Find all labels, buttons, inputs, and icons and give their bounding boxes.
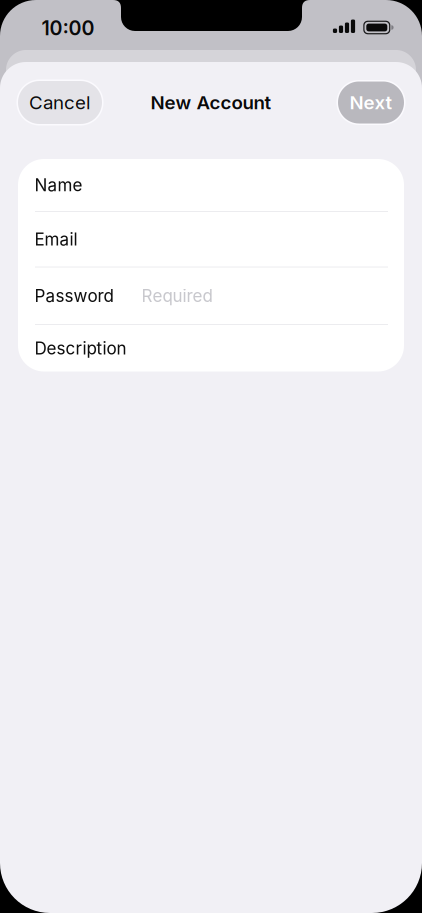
- staticText: Password: [34, 285, 113, 306]
- staticText: Description: [34, 338, 126, 359]
- staticText: Required: [141, 285, 212, 306]
- staticText: Email: [34, 229, 77, 250]
- button[interactable]: Cancel: [18, 81, 102, 124]
- staticText: Cancel: [29, 91, 91, 114]
- button[interactable]: Description: [18, 325, 404, 371]
- staticText: Name: [34, 175, 82, 195]
- button[interactable]: Password: [18, 267, 404, 324]
- staticText: 10:00: [41, 16, 94, 40]
- button[interactable]: Next: [338, 81, 404, 123]
- staticText: Next: [349, 91, 392, 114]
- button[interactable]: Email: [18, 212, 404, 266]
- button[interactable]: Name: [18, 159, 404, 211]
- staticText: New Account: [150, 91, 271, 114]
